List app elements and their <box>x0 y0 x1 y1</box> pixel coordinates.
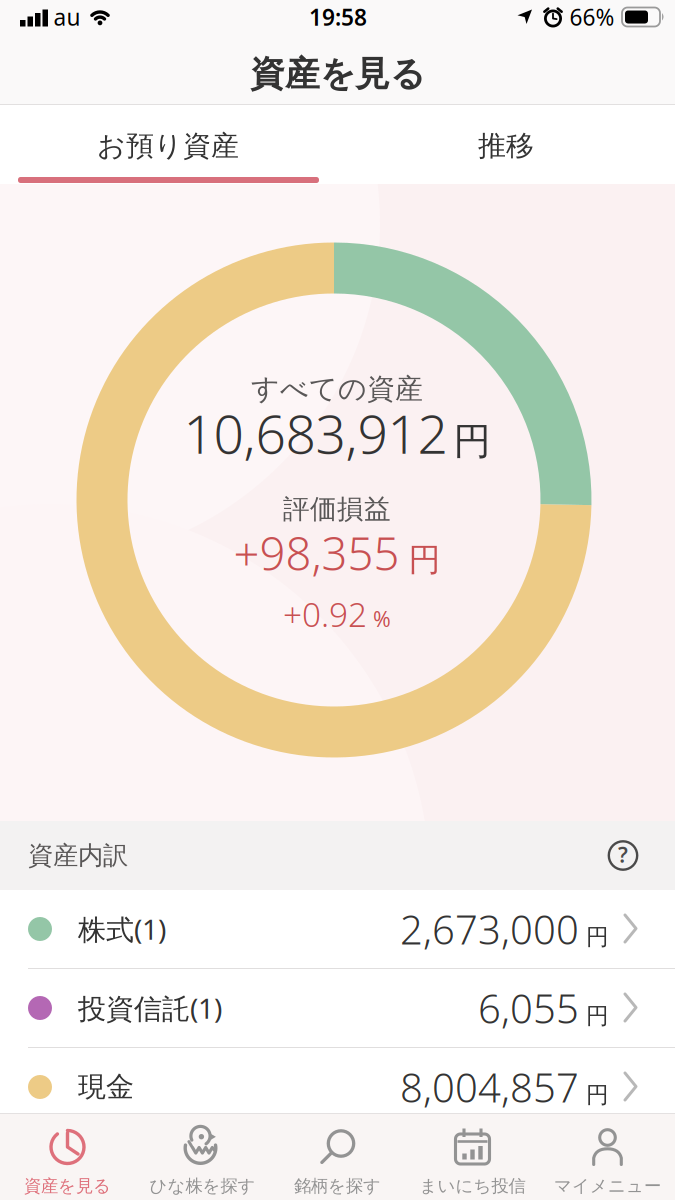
staticText: 10,683,912 <box>183 398 447 468</box>
staticText: マイメニュー <box>554 1175 661 1197</box>
staticText: 8,004,857 <box>400 1060 579 1113</box>
staticText: すべての資産 <box>251 372 423 406</box>
button[interactable]: まいにち投信 <box>405 1114 540 1200</box>
staticText: 円 <box>453 418 490 464</box>
staticText: au <box>53 2 80 32</box>
staticText: % <box>373 604 391 633</box>
button[interactable]: 現金 <box>0 1048 675 1126</box>
button[interactable]: 推移 <box>337 106 675 185</box>
staticText: 円 <box>586 923 609 951</box>
staticText: 資産を見る <box>250 53 425 95</box>
button[interactable]: ひな株を探す <box>135 1114 270 1200</box>
staticText: 2,673,000 <box>400 902 579 955</box>
button[interactable]: 株式(1) <box>0 890 675 968</box>
staticText: 推移 <box>478 129 534 163</box>
staticText: 66% <box>569 2 614 32</box>
staticText: 資産を見る <box>24 1175 111 1197</box>
staticText: 資産内訳 <box>28 840 128 871</box>
staticText: +0.92 <box>283 592 367 636</box>
button[interactable]: 銘柄を探す <box>270 1114 405 1200</box>
staticText: 評価損益 <box>283 493 391 525</box>
staticText: +98,355 <box>233 523 399 583</box>
staticText: まいにち投信 <box>419 1175 525 1197</box>
staticText: 19:58 <box>309 2 367 32</box>
staticText: ? <box>618 840 628 869</box>
staticText: 6,055 <box>478 981 579 1034</box>
staticText: お預り資産 <box>97 129 239 163</box>
staticText: 円 <box>408 540 440 580</box>
staticText: 円 <box>586 1081 609 1109</box>
staticText: 投資信託(1) <box>78 989 222 1027</box>
staticText: 現金 <box>78 1070 134 1104</box>
button[interactable]: お預り資産 <box>0 106 336 185</box>
button[interactable]: ヘルプ <box>607 839 675 871</box>
staticText: ひな株を探す <box>149 1175 255 1197</box>
staticText: 銘柄を探す <box>294 1175 381 1197</box>
staticText: 円 <box>586 1002 609 1030</box>
button[interactable]: 投資信託(1) <box>0 969 675 1047</box>
button[interactable]: 資産を見る <box>0 1114 135 1200</box>
button[interactable]: マイメニュー <box>540 1114 675 1200</box>
staticText: 株式(1) <box>78 910 166 948</box>
